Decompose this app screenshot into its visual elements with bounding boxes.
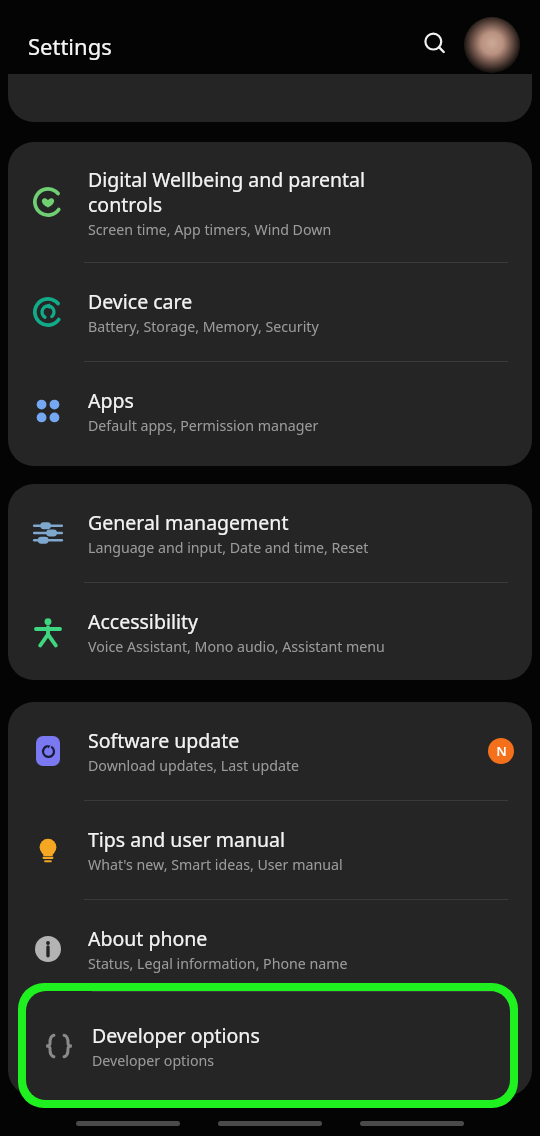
staticText: Software update bbox=[88, 727, 240, 754]
button[interactable]: Tips and user manual bbox=[8, 801, 532, 899]
staticText: N bbox=[496, 742, 507, 760]
staticText: About phone bbox=[88, 925, 208, 952]
staticText: Developer options bbox=[88, 1053, 211, 1072]
button[interactable]: Software update bbox=[8, 702, 532, 800]
button[interactable]: Back bbox=[358, 1114, 466, 1132]
button[interactable]: General management bbox=[8, 484, 532, 582]
button[interactable]: Digital Wellbeing and parental controls bbox=[8, 142, 532, 262]
button[interactable]: Search bbox=[414, 23, 456, 65]
button[interactable]: Account bbox=[464, 17, 520, 73]
button[interactable]: Accessibility bbox=[8, 583, 532, 680]
staticText: Download updates, Last update bbox=[88, 756, 300, 775]
button[interactable]: Home bbox=[216, 1114, 324, 1132]
staticText: Screen time, App timers, Wind Down bbox=[88, 220, 332, 239]
staticText: Device care bbox=[88, 288, 193, 315]
staticText: Developer options bbox=[92, 1051, 215, 1070]
staticText: Digital Wellbeing and parental controls bbox=[88, 166, 366, 218]
staticText: Tips and user manual bbox=[88, 826, 286, 853]
staticText: Developer options bbox=[88, 1024, 256, 1051]
staticText: Battery, Storage, Memory, Security bbox=[88, 317, 319, 336]
staticText: Apps bbox=[88, 387, 134, 414]
staticText: Default apps, Permission manager bbox=[88, 416, 319, 435]
button[interactable]: Developer options bbox=[8, 999, 532, 1096]
staticText: Developer options bbox=[92, 1022, 260, 1049]
staticText: What's new, Smart ideas, User manual bbox=[88, 855, 343, 874]
staticText: Language and input, Date and time, Reset bbox=[88, 538, 369, 557]
button[interactable]: About phone bbox=[8, 900, 532, 998]
staticText: Status, Legal information, Phone name bbox=[88, 954, 348, 973]
button[interactable]: Recents bbox=[74, 1114, 182, 1132]
staticText: Settings bbox=[28, 31, 112, 61]
staticText: General management bbox=[88, 509, 289, 536]
button[interactable]: Device care bbox=[8, 263, 532, 361]
button[interactable] bbox=[8, 74, 532, 122]
staticText: Accessibility bbox=[88, 608, 198, 635]
staticText: Voice Assistant, Mono audio, Assistant m… bbox=[88, 637, 385, 656]
button[interactable]: Apps bbox=[8, 362, 532, 460]
